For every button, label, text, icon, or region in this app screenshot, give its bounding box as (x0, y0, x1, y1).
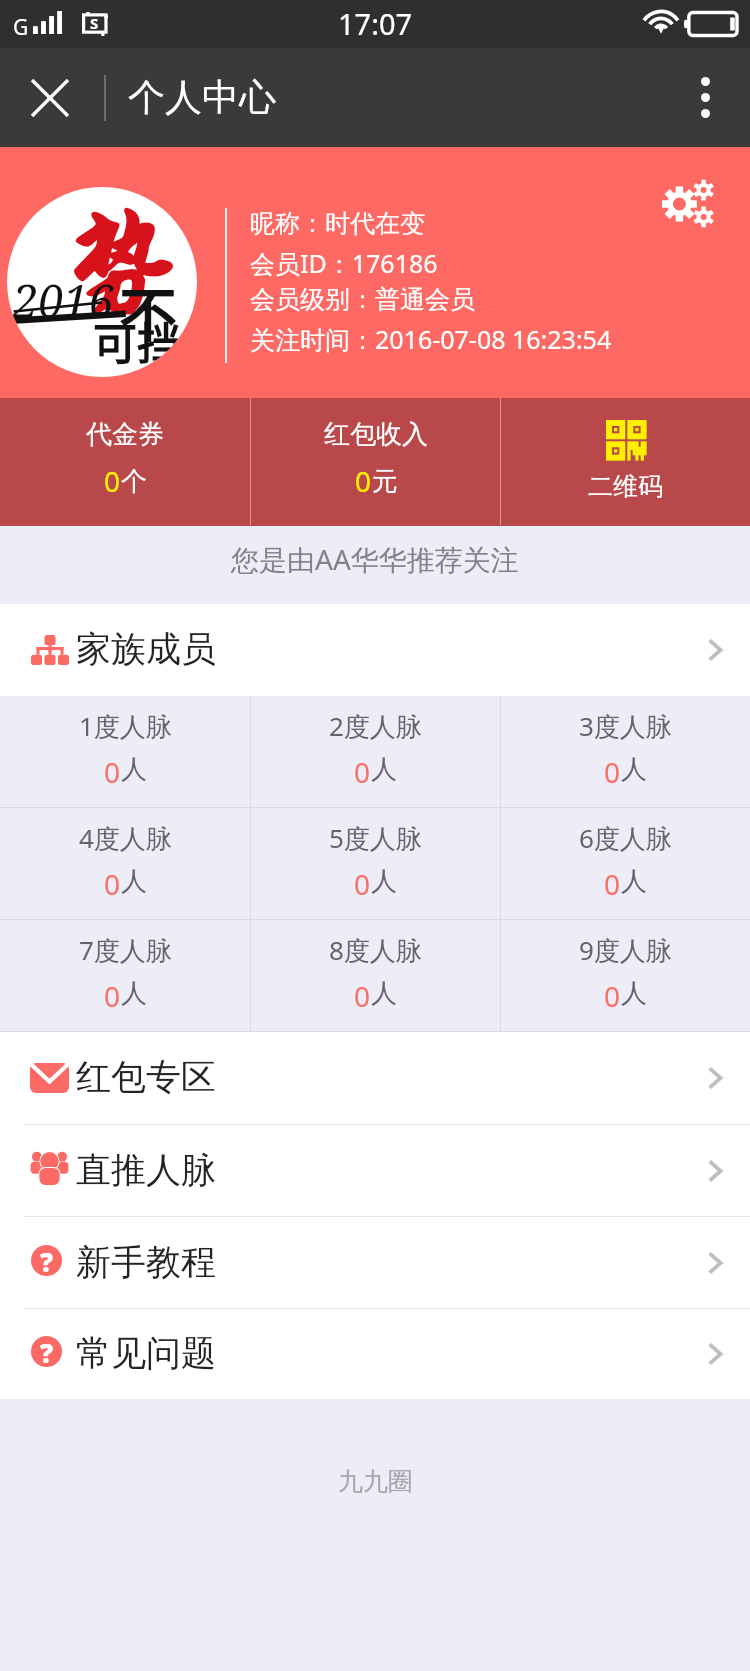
button[interactable]: ? (0, 1309, 750, 1399)
staticText: 0 (104, 977, 121, 1015)
staticText: 0 (604, 977, 621, 1015)
staticText: 二维码 (588, 471, 663, 502)
staticText: 个 (121, 465, 147, 498)
staticText: 0 (104, 753, 121, 791)
staticText: 1度人脉 (79, 708, 172, 744)
staticText: 常见问题 (76, 1331, 216, 1375)
staticText: 0 (354, 865, 371, 903)
staticText: 可挡 (93, 309, 181, 373)
staticText: 昵称：时代在变 (250, 208, 425, 239)
staticText: 人 (371, 753, 397, 786)
staticText: 不 (119, 269, 178, 353)
staticText: 人 (371, 865, 397, 898)
staticText: 0 (604, 753, 621, 791)
button[interactable]: 6度人脉 (501, 808, 750, 919)
staticText: 红包收入 (324, 418, 428, 451)
staticText: 人 (371, 977, 397, 1010)
staticText: 17:07 (338, 4, 413, 43)
button[interactable]: 3度人脉 (501, 696, 750, 807)
staticText: S (90, 13, 99, 33)
staticText: 代金券 (86, 418, 164, 451)
staticText: 元 (372, 465, 398, 498)
staticText: 关注时间：2016-07-08 16:23:54 (250, 322, 612, 356)
staticText: 6度人脉 (579, 820, 672, 856)
staticText: 3度人脉 (579, 708, 672, 744)
button[interactable]: 代金券 (0, 398, 250, 526)
staticText: 4度人脉 (79, 820, 172, 856)
button[interactable]: 4度人脉 (0, 808, 250, 919)
button[interactable]: 红包收入 (251, 398, 500, 526)
button[interactable]: 1度人脉 (0, 696, 250, 807)
button[interactable]: 二维码 (501, 398, 750, 526)
button[interactable]: 2度人脉 (251, 696, 500, 807)
staticText: 九九圈 (338, 1466, 413, 1497)
staticText: 您是由AA华华推荐关注 (231, 540, 519, 578)
staticText: 直推人脉 (76, 1148, 216, 1192)
button[interactable]: 红包专区 (0, 1032, 750, 1124)
staticText: 0 (354, 753, 371, 791)
staticText: ? (40, 1244, 54, 1275)
button[interactable]: 5度人脉 (251, 808, 500, 919)
staticText: 0 (354, 977, 371, 1015)
button[interactable]: Settings (655, 171, 721, 237)
staticText: 会员级别：普通会员 (250, 284, 475, 315)
staticText: 8度人脉 (329, 932, 422, 968)
staticText: G (13, 13, 29, 42)
button[interactable]: More options (660, 48, 750, 147)
button[interactable]: 7度人脉 (0, 920, 250, 1031)
staticText: 2度人脉 (329, 708, 422, 744)
button[interactable]: Avatar (7, 187, 197, 377)
staticText: 人 (121, 977, 147, 1010)
staticText: 会员ID：176186 (250, 246, 438, 280)
staticText: 人 (121, 753, 147, 786)
staticText: 0 (104, 462, 121, 500)
button[interactable]: 8度人脉 (251, 920, 500, 1031)
staticText: 0 (604, 865, 621, 903)
button[interactable]: ? (0, 1217, 750, 1308)
staticText: 人 (621, 865, 647, 898)
staticText: 红包专区 (76, 1055, 216, 1099)
staticText: 0 (355, 462, 372, 500)
staticText: 2016 (13, 270, 114, 331)
staticText: 人 (121, 865, 147, 898)
button[interactable]: Close (0, 48, 100, 147)
staticText: 个人中心 (128, 74, 276, 121)
button[interactable]: 直推人脉 (0, 1125, 750, 1216)
button[interactable]: 9度人脉 (501, 920, 750, 1031)
staticText: 家族成员 (76, 627, 216, 671)
staticText: 人 (621, 977, 647, 1010)
staticText: ? (40, 1335, 54, 1366)
staticText: 0 (104, 865, 121, 903)
staticText: 势 (64, 199, 183, 331)
staticText: 9度人脉 (579, 932, 672, 968)
button[interactable]: 家族成员 (0, 604, 750, 696)
staticText: 新手教程 (76, 1240, 216, 1284)
staticText: 5度人脉 (329, 820, 422, 856)
staticText: 7度人脉 (79, 932, 172, 968)
staticText: 人 (621, 753, 647, 786)
